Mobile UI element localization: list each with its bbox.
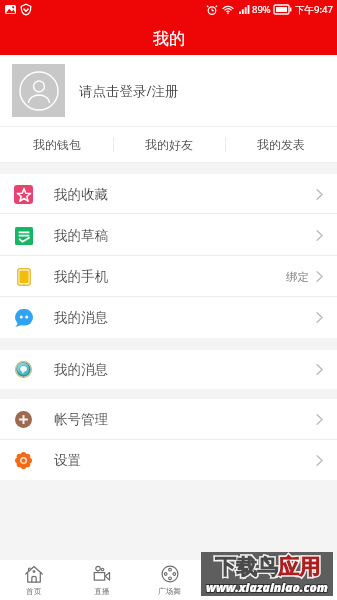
staticText: 应用 xyxy=(278,554,320,580)
button[interactable]: 我的消息 xyxy=(0,297,337,338)
staticText: 首页 xyxy=(26,586,42,596)
button[interactable]: 直播 xyxy=(68,560,136,600)
button[interactable]: 我的 xyxy=(270,560,337,600)
button[interactable]: 设置 xyxy=(0,440,337,480)
staticText: 下载鸟 xyxy=(215,554,278,580)
staticText: 下载鸟 xyxy=(215,554,278,580)
staticText: 发现 xyxy=(229,586,245,596)
button[interactable]: 我的钱包 xyxy=(0,126,113,163)
staticText: 我的收藏 xyxy=(54,186,108,203)
staticText: 应用 xyxy=(278,554,320,580)
staticText: 我的消息 xyxy=(54,309,108,326)
button[interactable]: 首页 xyxy=(0,560,68,600)
button[interactable]: 我的发表 xyxy=(225,126,337,163)
button[interactable]: 我的消息 xyxy=(0,350,337,389)
staticText: 我的草稿 xyxy=(54,227,108,244)
staticText: 我的手机 xyxy=(54,268,108,285)
staticText: 我的消息 xyxy=(54,361,108,378)
staticText: 帐号管理 xyxy=(54,411,108,428)
staticText: 我的 xyxy=(153,29,185,49)
staticText: 直播 xyxy=(94,586,110,596)
staticText: 我的 xyxy=(296,586,312,596)
staticText: 我的发表 xyxy=(257,137,305,152)
button[interactable]: 我的收藏 xyxy=(0,174,337,214)
staticText: 89% xyxy=(252,3,271,16)
button[interactable]: 请点击登录/注册 xyxy=(12,55,337,126)
staticText: 下午9:47 xyxy=(295,3,333,16)
staticText: 绑定 xyxy=(286,270,309,284)
staticText: www.xiazainiao.com xyxy=(206,579,328,595)
staticText: 我的好友 xyxy=(145,137,193,152)
button[interactable]: 广场舞 xyxy=(136,560,203,600)
staticText: 广场舞 xyxy=(158,586,182,596)
button[interactable]: 我的手机 xyxy=(0,256,337,297)
staticText: 设置 xyxy=(54,452,81,469)
button[interactable]: 我的草稿 xyxy=(0,214,337,256)
staticText: 请点击登录/注册 xyxy=(79,82,179,100)
button[interactable]: 帐号管理 xyxy=(0,399,337,440)
staticText: 我的钱包 xyxy=(33,137,81,152)
staticText: www.xiazainiao.com xyxy=(206,579,328,595)
button[interactable]: 我的好友 xyxy=(113,126,225,163)
button[interactable]: 发现 xyxy=(203,560,270,600)
